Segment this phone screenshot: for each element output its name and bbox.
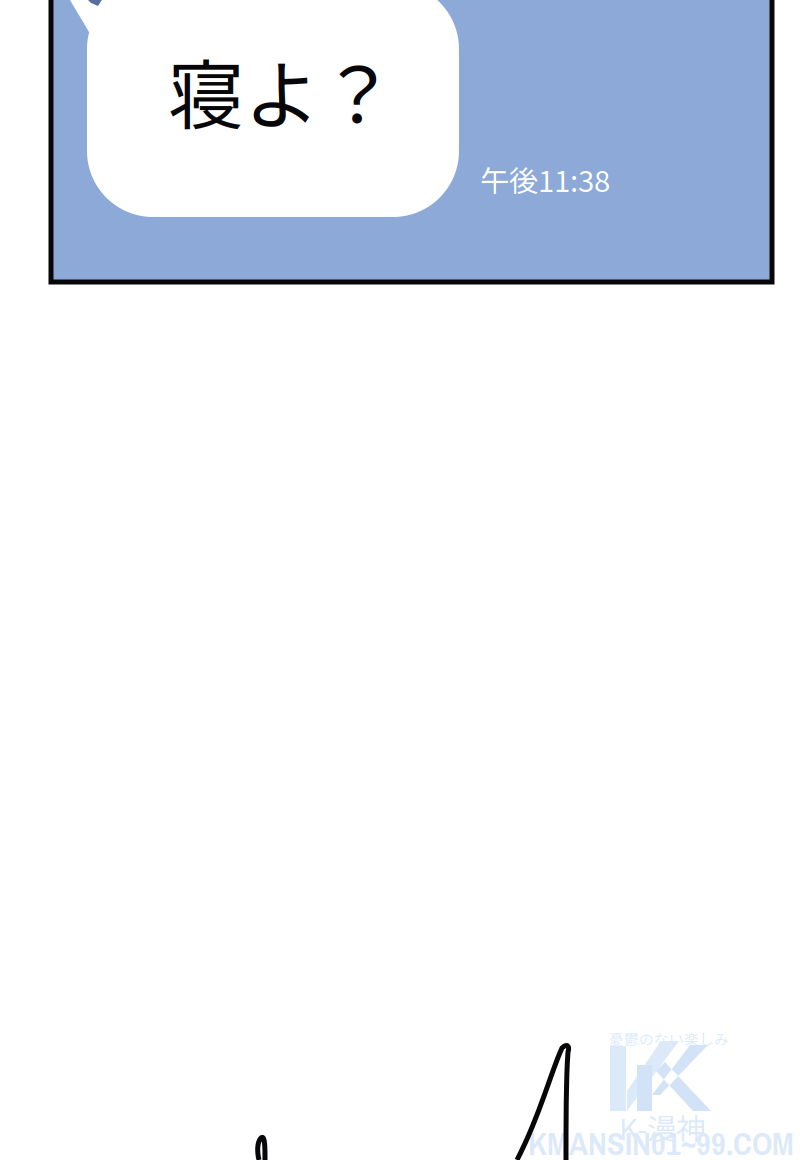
button[interactable]: K-漫神 KMANSIN01~99.COM <box>528 1026 798 1158</box>
staticText: KMANSIN01~99.COM <box>528 1122 794 1160</box>
staticText: 寝よ？ <box>168 35 396 145</box>
staticText: K-漫神 <box>619 1106 705 1148</box>
button[interactable]: 寝よ？ <box>51 0 772 282</box>
staticText: 午後11:38 <box>480 158 610 200</box>
staticText: 憂鬱のない楽しみ <box>609 1028 729 1049</box>
